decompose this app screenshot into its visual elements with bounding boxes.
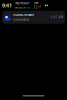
staticText: 72° F bbox=[33, 6, 40, 9]
staticText: WEDNESDAY bbox=[15, 2, 30, 5]
staticText: Connected bbox=[13, 18, 29, 21]
staticText: 9:41 bbox=[2, 2, 12, 9]
button[interactable]: eDataConMon bbox=[2, 11, 65, 24]
staticText: eDataConMon bbox=[13, 13, 34, 17]
staticText: 6:41 AM bbox=[51, 15, 63, 19]
staticText: TEMP bbox=[33, 2, 39, 5]
staticText: AUGUST 10 bbox=[15, 6, 30, 9]
